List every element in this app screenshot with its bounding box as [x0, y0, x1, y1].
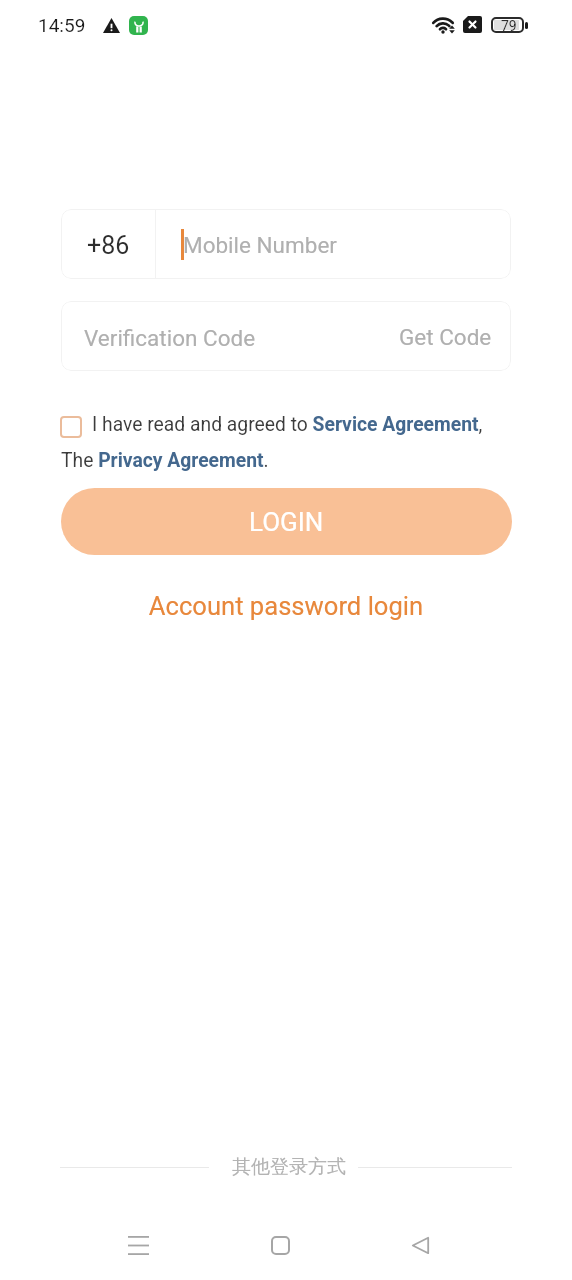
staticText: Get Code — [399, 324, 492, 350]
button[interactable]: I have read and agreed to Service Agreem… — [92, 413, 483, 436]
button[interactable]: Account password login — [0, 591, 572, 621]
button[interactable]: Verification Code — [61, 301, 399, 371]
button[interactable]: +86 — [61, 209, 155, 279]
staticText: Verification Code — [84, 325, 256, 351]
staticText: +86 — [87, 231, 130, 260]
button[interactable]: Agree to terms — [60, 416, 82, 438]
staticText: Mobile Number — [183, 232, 337, 258]
staticText: LOGIN — [249, 507, 324, 537]
button[interactable]: LOGIN — [61, 488, 512, 555]
button[interactable]: Home — [256, 1221, 304, 1269]
staticText: 79 — [501, 18, 517, 34]
button[interactable]: The Privacy Agreement. — [61, 449, 269, 472]
button[interactable]: Get Code — [399, 301, 492, 371]
button[interactable]: Back — [396, 1221, 444, 1269]
button[interactable]: Recents — [114, 1221, 162, 1269]
staticText: 其他登录方式 — [232, 1155, 346, 1179]
button[interactable]: Mobile Number — [156, 209, 511, 279]
staticText: 14:59 — [38, 14, 86, 36]
